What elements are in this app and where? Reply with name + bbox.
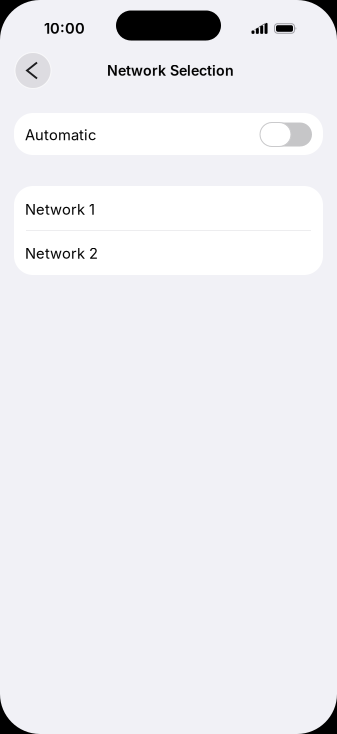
button[interactable]: Network 1 <box>14 186 323 230</box>
button[interactable]: Automatic <box>260 121 312 146</box>
button[interactable]: Back <box>15 52 51 88</box>
button[interactable]: Network 2 <box>14 231 323 275</box>
staticText: Network 2 <box>25 245 98 262</box>
staticText: Network Selection <box>107 62 234 79</box>
staticText: Network 1 <box>25 201 95 218</box>
staticText: 10:00 <box>44 19 85 37</box>
staticText: Automatic <box>25 126 96 144</box>
